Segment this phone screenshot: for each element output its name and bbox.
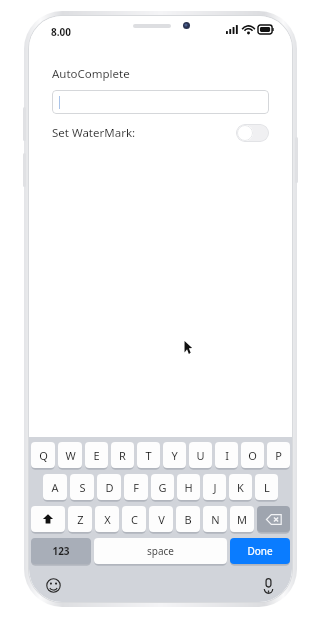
button[interactable]: G [151, 474, 174, 500]
button[interactable]: space [94, 538, 227, 564]
staticText: AutoComplete [52, 66, 130, 82]
staticText: F [133, 480, 139, 495]
staticText: H [184, 480, 193, 495]
button[interactable]: T [137, 442, 160, 468]
button[interactable]: S [70, 474, 94, 500]
staticText: A [51, 480, 59, 495]
staticText: V [158, 512, 165, 527]
button[interactable]: Y [163, 442, 186, 468]
button[interactable]: Voice input [258, 575, 278, 595]
staticText: S [79, 480, 86, 495]
button[interactable]: P [267, 442, 290, 468]
staticText: X [104, 512, 111, 527]
staticText: Y [171, 448, 178, 463]
button[interactable]: Q [31, 442, 55, 468]
button[interactable]: X [95, 506, 119, 532]
button[interactable]: Set WaterMark toggle [236, 124, 269, 142]
staticText: D [105, 480, 114, 495]
button[interactable]: 123 [31, 538, 91, 564]
staticText: E [93, 448, 100, 463]
staticText: G [158, 480, 167, 495]
button[interactable]: M [230, 506, 254, 532]
staticText: J [213, 480, 217, 495]
staticText: I [225, 448, 229, 463]
button[interactable]: C [122, 506, 146, 532]
button[interactable]: L [255, 474, 278, 500]
button[interactable]: F [124, 474, 148, 500]
button[interactable]: A [43, 474, 67, 500]
staticText: R [119, 448, 126, 463]
staticText: T [145, 448, 152, 463]
button[interactable]: J [203, 474, 226, 500]
staticText: O [248, 448, 257, 463]
button[interactable]: W [58, 442, 82, 468]
button[interactable]: Backspace [257, 506, 290, 532]
staticText: B [184, 512, 192, 527]
staticText: U [196, 448, 205, 463]
staticText: Z [77, 512, 84, 527]
button[interactable]: B [176, 506, 200, 532]
staticText: 8.00 [51, 25, 71, 39]
button[interactable]: D [97, 474, 121, 500]
button[interactable] [52, 90, 269, 114]
button[interactable]: Shift [31, 506, 65, 532]
button[interactable]: Z [68, 506, 92, 532]
staticText: N [211, 512, 220, 527]
staticText: W [65, 448, 76, 463]
staticText: C [131, 512, 138, 527]
button[interactable]: N [203, 506, 227, 532]
button[interactable]: K [229, 474, 252, 500]
button[interactable]: H [177, 474, 200, 500]
button[interactable]: V [149, 506, 173, 532]
button[interactable]: O [241, 442, 264, 468]
staticText: Done [247, 544, 273, 558]
button[interactable]: I [215, 442, 238, 468]
staticText: M [237, 512, 247, 527]
button[interactable]: Done [230, 538, 290, 564]
staticText: 123 [52, 544, 70, 558]
staticText: space [147, 544, 174, 558]
button[interactable]: R [111, 442, 134, 468]
staticText: Set WaterMark: [52, 125, 136, 141]
staticText: P [275, 448, 282, 463]
button[interactable]: E [85, 442, 108, 468]
staticText: L [264, 480, 270, 495]
staticText: K [237, 480, 244, 495]
button[interactable]: U [189, 442, 212, 468]
staticText: Q [39, 448, 48, 463]
button[interactable]: Emoji [43, 575, 63, 595]
